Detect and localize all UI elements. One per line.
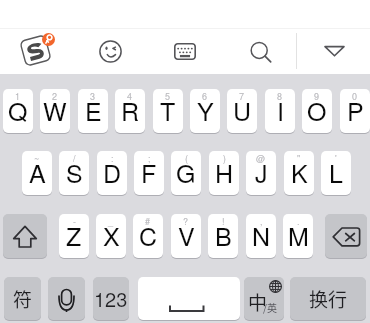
button[interactable]: 4: [115, 89, 145, 133]
button[interactable]: ': [321, 151, 351, 195]
staticText: E: [85, 92, 102, 128]
staticText: 7: [239, 90, 245, 103]
button[interactable]: !: [208, 214, 238, 258]
button[interactable]: 7: [227, 89, 257, 133]
staticText: M: [288, 217, 309, 253]
button[interactable]: :: [97, 151, 127, 195]
button[interactable]: Emoji: [99, 40, 122, 63]
staticText: P: [347, 92, 364, 128]
staticText: 6: [202, 90, 208, 103]
staticText: :: [111, 152, 114, 165]
button[interactable]: Voice input: [48, 277, 85, 320]
staticText: Q: [8, 92, 28, 128]
button[interactable]: 6: [190, 89, 220, 133]
staticText: Z: [66, 217, 82, 253]
staticText: 2: [52, 90, 58, 103]
staticText: ;: [148, 152, 151, 165]
button[interactable]: 2: [40, 89, 70, 133]
staticText: F: [141, 154, 157, 190]
staticText: C: [139, 217, 158, 253]
staticText: 换行: [309, 285, 348, 313]
staticText: V: [178, 217, 195, 253]
staticText: D: [103, 154, 122, 190]
staticText: G: [176, 154, 196, 190]
button[interactable]: Search: [250, 41, 273, 64]
staticText: 8: [277, 90, 283, 103]
button[interactable]: (: [171, 151, 201, 195]
staticText: 4: [127, 90, 133, 103]
staticText: I: [277, 92, 284, 128]
button[interactable]: Keyboard layout: [174, 43, 196, 60]
staticText: X: [103, 217, 120, 253]
button[interactable]: ;: [134, 151, 164, 195]
button[interactable]: ~: [22, 151, 52, 195]
staticText: ~: [34, 152, 40, 165]
button[interactable]: ": [284, 151, 314, 195]
staticText: _: [108, 215, 114, 228]
staticText: /: [73, 152, 76, 165]
button[interactable]: .: [283, 214, 313, 258]
staticText: ": [297, 152, 301, 165]
staticText: ?: [183, 215, 189, 228]
staticText: K: [291, 154, 308, 190]
staticText: #: [145, 215, 151, 228]
button[interactable]: 3: [78, 89, 108, 133]
button[interactable]: Sogou input settings: [19, 31, 57, 69]
staticText: B: [215, 217, 232, 253]
button[interactable]: ): [209, 151, 239, 195]
button[interactable]: 1: [3, 89, 33, 133]
staticText: 1: [15, 90, 21, 103]
button[interactable]: Space: [138, 277, 240, 320]
button[interactable]: ?: [171, 214, 201, 258]
staticText: 9: [314, 90, 320, 103]
staticText: R: [121, 92, 140, 128]
staticText: 5: [165, 90, 171, 103]
button[interactable]: -: [59, 214, 89, 258]
staticText: 0: [352, 90, 358, 103]
staticText: J: [255, 154, 268, 190]
staticText: 中: [248, 288, 268, 316]
staticText: U: [233, 92, 252, 128]
staticText: H: [215, 154, 234, 190]
staticText: 123: [94, 284, 128, 313]
staticText: 符: [13, 285, 33, 313]
staticText: W: [43, 92, 67, 128]
staticText: @: [256, 152, 266, 165]
staticText: L: [329, 154, 343, 190]
staticText: -: [73, 215, 76, 228]
staticText: 3: [90, 90, 96, 103]
staticText: !: [222, 215, 225, 228]
button[interactable]: _: [96, 214, 126, 258]
staticText: .: [297, 215, 300, 228]
button[interactable]: @: [246, 151, 276, 195]
button[interactable]: /: [59, 151, 89, 195]
staticText: (: [185, 152, 188, 165]
staticText: T: [160, 92, 176, 128]
button[interactable]: ,: [246, 214, 276, 258]
staticText: S: [66, 154, 83, 190]
button[interactable]: 换行: [290, 277, 366, 320]
button[interactable]: Chinese English switch: [244, 277, 284, 320]
staticText: O: [307, 92, 327, 128]
button[interactable]: 123: [93, 277, 129, 320]
button[interactable]: 符: [4, 277, 41, 320]
staticText: /英: [263, 300, 277, 314]
button[interactable]: 8: [265, 89, 295, 133]
button[interactable]: Backspace: [325, 214, 367, 258]
staticText: N: [252, 217, 271, 253]
staticText: ,: [260, 215, 263, 228]
button[interactable]: 5: [153, 89, 183, 133]
staticText: A: [29, 154, 46, 190]
button[interactable]: Shift: [3, 214, 47, 258]
button[interactable]: Hide keyboard: [324, 45, 345, 57]
staticText: Y: [197, 92, 214, 128]
button[interactable]: #: [133, 214, 163, 258]
button[interactable]: 0: [340, 89, 370, 133]
staticText: ': [335, 152, 337, 165]
button[interactable]: 9: [302, 89, 332, 133]
staticText: ): [223, 152, 226, 165]
